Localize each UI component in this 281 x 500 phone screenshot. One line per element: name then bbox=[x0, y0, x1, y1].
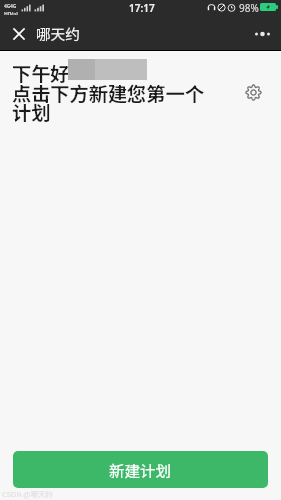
button[interactable]: 新建计划 bbox=[13, 451, 268, 488]
staticText: 下午好 点击下方新建您第一个计划 bbox=[12, 59, 208, 125]
button[interactable]: Settings bbox=[243, 82, 263, 102]
staticText: 新建计划 bbox=[109, 459, 172, 481]
staticText: 98% bbox=[239, 1, 259, 15]
button[interactable]: Close bbox=[8, 23, 30, 45]
staticText: 17:17 bbox=[129, 1, 155, 15]
staticText: CSDN @哪天约 bbox=[2, 488, 53, 499]
staticText: HD bbox=[4, 11, 12, 15]
staticText: 哪天约 bbox=[36, 23, 80, 44]
button[interactable]: More options bbox=[251, 22, 275, 46]
staticText: VoL bbox=[10, 11, 20, 15]
staticText: 4G bbox=[4, 3, 11, 10]
staticText: 4G bbox=[10, 3, 17, 10]
